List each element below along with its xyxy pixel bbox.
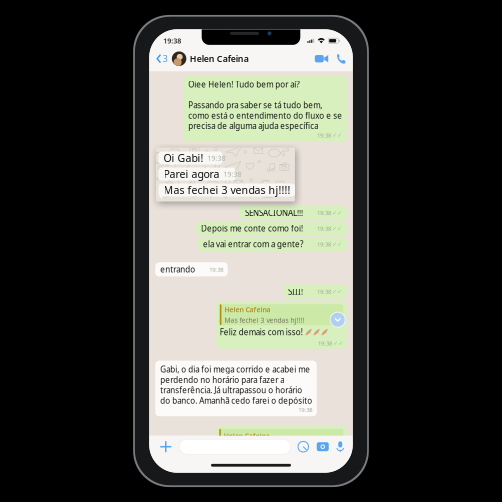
- staticText: Oiee Helen! Tudo bem por aí?: [188, 79, 299, 90]
- staticText: 19:38: [294, 185, 312, 195]
- button[interactable]: Voice call: [331, 54, 346, 64]
- staticText: 19:38: [317, 240, 331, 248]
- staticText: Depois me conte como foi!: [201, 223, 303, 234]
- staticText: 19:38: [317, 131, 331, 139]
- staticText: 19:38: [317, 288, 331, 296]
- staticText: ✓✓: [332, 225, 342, 232]
- staticText: SENSACIONAL!!!: [245, 207, 303, 218]
- button[interactable]: Voice message: [337, 441, 344, 452]
- staticText: 19:38: [318, 339, 332, 347]
- button[interactable]: Attach: [158, 439, 173, 454]
- staticText: Gabi, o dia foi mega corrido e acabei me: [160, 364, 310, 375]
- staticText: 19:38: [317, 209, 331, 217]
- staticText: SIII!: [288, 286, 303, 297]
- staticText: ✓✓: [332, 209, 342, 216]
- staticText: Helen Cafeina: [224, 305, 270, 314]
- staticText: Mas fechei 3 vendas hj!!!!: [163, 183, 290, 197]
- staticText: Helen Cafeina: [224, 431, 270, 440]
- staticText: do banco. Amanhã cedo farei o depósito: [160, 395, 312, 406]
- staticText: 19:38: [298, 406, 312, 414]
- staticText: Feliz demais com isso!: [220, 327, 303, 338]
- staticText: 19:38: [209, 265, 223, 273]
- staticText: perdendo no horário para fazer a: [160, 374, 284, 385]
- staticText: 19:38: [223, 169, 241, 179]
- staticText: ✓✓: [333, 340, 343, 347]
- staticText: transferência. Já ultrapassou o horário: [160, 385, 302, 396]
- button[interactable]: Camera: [317, 442, 329, 451]
- staticText: 3: [163, 53, 168, 65]
- staticText: como está o entendimento do fluxo e se: [188, 110, 342, 121]
- button[interactable]: Back: [156, 53, 172, 65]
- staticText: ela vai entrar com a gente?: [203, 239, 303, 250]
- staticText: Helen Cafeina: [190, 53, 249, 65]
- button[interactable]: Scroll to bottom: [329, 311, 347, 329]
- staticText: ✓✓: [332, 132, 342, 139]
- staticText: entrando: [160, 264, 195, 275]
- staticText: Parei agora: [163, 167, 219, 181]
- staticText: Oi Gabi!: [163, 151, 203, 165]
- staticText: ✓✓: [332, 241, 342, 248]
- button[interactable]: Stickers: [298, 441, 309, 452]
- button[interactable]: Helen Cafeina: [172, 51, 249, 66]
- staticText: Mas fechei 3 vendas hj!!!!: [224, 316, 304, 325]
- staticText: 19:38: [207, 153, 225, 163]
- staticText: ✓✓: [332, 288, 342, 295]
- button[interactable]: Video call: [312, 55, 331, 63]
- staticText: precisa de alguma ajuda específica: [188, 121, 318, 131]
- staticText: 19:38: [163, 36, 181, 46]
- staticText: 19:38: [317, 224, 331, 232]
- staticText: Passando pra saber se tá tudo bem,: [188, 100, 322, 111]
